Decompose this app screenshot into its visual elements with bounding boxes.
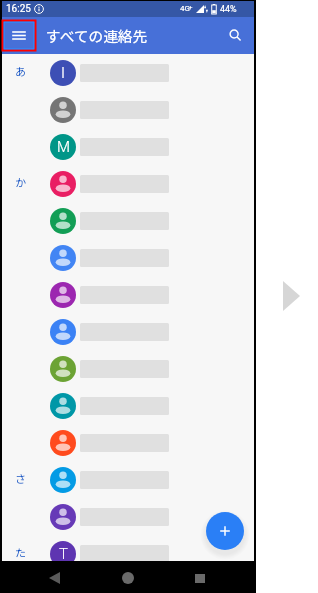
- staticText: T: [59, 545, 68, 563]
- button[interactable]: Recent apps: [188, 568, 212, 588]
- staticText: +: [189, 3, 193, 10]
- staticText: た: [15, 544, 26, 560]
- button[interactable]: Search: [220, 21, 248, 49]
- button[interactable]: [2, 388, 254, 425]
- button[interactable]: [2, 92, 254, 129]
- button[interactable]: [2, 277, 254, 314]
- button[interactable]: [2, 203, 254, 240]
- staticText: あ: [15, 63, 26, 79]
- button[interactable]: Open navigation drawer: [2, 20, 36, 51]
- staticText: 4G: [180, 4, 190, 13]
- staticText: すべての連絡先: [46, 25, 148, 46]
- button[interactable]: Add contact: [206, 512, 244, 550]
- button[interactable]: [2, 351, 254, 388]
- staticText: I: [61, 64, 65, 82]
- button[interactable]: [2, 425, 254, 462]
- staticText: M: [57, 138, 70, 156]
- staticText: 16:25: [6, 3, 31, 15]
- button[interactable]: [2, 55, 254, 92]
- button[interactable]: [2, 166, 254, 203]
- button[interactable]: [2, 462, 254, 499]
- staticText: か: [15, 174, 26, 190]
- button[interactable]: [2, 314, 254, 351]
- staticText: 44%: [220, 4, 237, 15]
- button[interactable]: [2, 536, 254, 573]
- button[interactable]: Home: [116, 568, 140, 588]
- button[interactable]: [2, 129, 254, 166]
- button[interactable]: Back: [42, 568, 66, 588]
- button[interactable]: [2, 499, 254, 536]
- button[interactable]: [2, 240, 254, 277]
- staticText: さ: [15, 470, 26, 486]
